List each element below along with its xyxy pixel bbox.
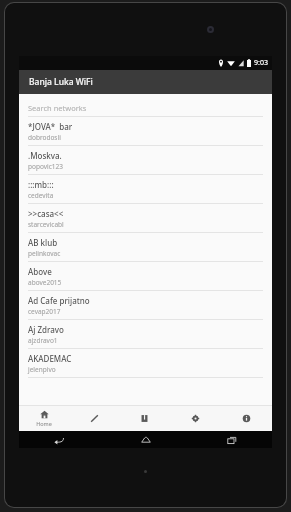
staticText: cedevita: [28, 191, 54, 200]
staticText: :::mb:::: [28, 179, 54, 190]
staticText: *JOVA* bar: [28, 121, 73, 132]
button[interactable]: Back: [49, 431, 69, 448]
staticText: ajzdravo1: [28, 336, 58, 345]
staticText: Banja Luka WiFi: [29, 76, 93, 88]
staticText: .Moskva.: [28, 150, 62, 161]
staticText: dobrodosli: [28, 133, 61, 142]
staticText: jelenpivo: [28, 365, 56, 374]
button[interactable]: *JOVA* bar: [19, 117, 272, 146]
button[interactable]: >>casa<<: [19, 204, 272, 233]
staticText: above2015: [28, 278, 62, 287]
staticText: Above: [28, 266, 52, 277]
staticText: pelinkovac: [28, 249, 61, 258]
button[interactable]: Search networks: [28, 94, 263, 117]
button[interactable]: Edit: [69, 406, 119, 431]
staticText: starcevicabl: [28, 220, 64, 229]
staticText: 9:03: [254, 58, 268, 68]
button[interactable]: Map: [119, 406, 170, 431]
staticText: Ad Cafe prijatno: [28, 295, 90, 306]
button[interactable]: Home: [136, 431, 156, 448]
staticText: Aj Zdravo: [28, 324, 64, 335]
button[interactable]: Ad Cafe prijatno: [19, 291, 272, 320]
button[interactable]: Recents: [222, 431, 242, 448]
button[interactable]: .Moskva.: [19, 146, 272, 175]
staticText: AKADEMAC: [28, 353, 72, 364]
staticText: Home: [36, 420, 52, 427]
button[interactable]: Info: [221, 406, 272, 431]
button[interactable]: Home: [19, 406, 69, 431]
button[interactable]: AB klub: [19, 233, 272, 262]
staticText: popovic123: [28, 162, 63, 171]
staticText: cevap2017: [28, 307, 61, 316]
button[interactable]: Above: [19, 262, 272, 291]
button[interactable]: AKADEMAC: [19, 349, 272, 378]
button[interactable]: Settings: [170, 406, 221, 431]
staticText: >>casa<<: [28, 208, 64, 219]
button[interactable]: :::mb:::: [19, 175, 272, 204]
staticText: Search networks: [28, 103, 87, 113]
button[interactable]: Aj Zdravo: [19, 320, 272, 349]
staticText: AB klub: [28, 237, 58, 248]
